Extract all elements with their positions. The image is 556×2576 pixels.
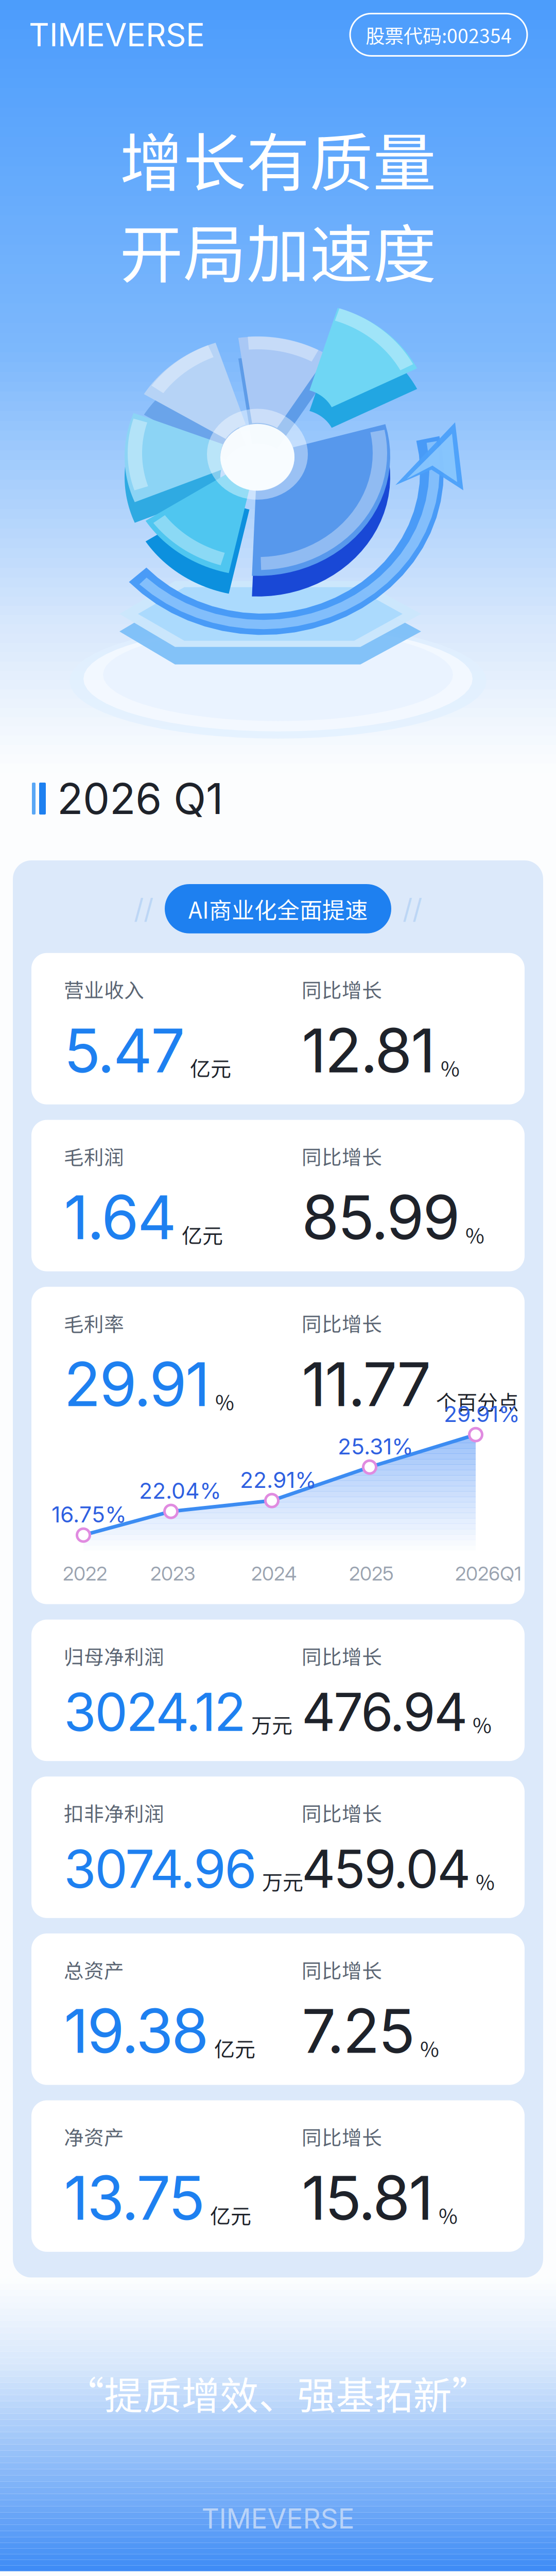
staticText: // (134, 892, 153, 925)
staticText: 13.75 (64, 2161, 205, 2234)
staticText: 12.81 (302, 1014, 436, 1087)
staticText: 同比增长 (302, 1641, 382, 1670)
staticText: % (465, 1219, 484, 1249)
staticText: 22.91% (240, 1467, 317, 1493)
staticText: 476.94 (302, 1680, 467, 1744)
staticText: 开局加速度 (120, 204, 436, 296)
staticText: 2022 (63, 1562, 107, 1585)
staticText: 2026 Q1 (57, 773, 223, 824)
staticText: 5.47 (64, 1014, 185, 1087)
staticText: 营业收入 (64, 975, 144, 1003)
staticText: % (215, 1386, 234, 1416)
staticText: 7.25 (302, 1994, 415, 2067)
staticText: 2025 (349, 1562, 394, 1585)
staticText: 29.91% (444, 1401, 520, 1427)
staticText: 11.77 (302, 1348, 431, 1421)
staticText: 同比增长 (302, 2122, 382, 2151)
staticText: 85.99 (302, 1181, 460, 1254)
staticText: 万元 (262, 1866, 303, 1896)
staticText: % (441, 1052, 460, 1082)
staticText: 1.64 (64, 1181, 177, 1254)
staticText: 同比增长 (302, 1798, 382, 1827)
staticText: 扣非净利润 (64, 1798, 164, 1827)
staticText: 同比增长 (302, 1955, 382, 1984)
staticText: 个百分点 (436, 1386, 518, 1416)
staticText: 毛利润 (64, 1142, 124, 1170)
staticText: 同比增长 (302, 975, 382, 1003)
staticText: 亿元 (182, 1219, 223, 1249)
staticText: 增长有质量 (120, 113, 436, 204)
staticText: 亿元 (214, 2033, 255, 2063)
staticText: TIMEVERSE (29, 16, 205, 54)
staticText: % (420, 2033, 439, 2063)
staticText: TIMEVERSE (202, 2502, 354, 2535)
staticText: 同比增长 (302, 1308, 382, 1337)
staticText: 25.31% (338, 1433, 413, 1460)
staticText: “提质增效、强基拓新” (66, 2365, 490, 2421)
staticText: 万元 (251, 1709, 292, 1739)
staticText: 总资产 (64, 1955, 124, 1984)
staticText: % (476, 1866, 495, 1896)
staticText: % (473, 1709, 492, 1739)
staticText: 3074.96 (64, 1837, 257, 1900)
staticText: 22.04% (139, 1477, 221, 1504)
staticText: 19.38 (64, 1994, 209, 2067)
staticText: // (403, 892, 422, 925)
staticText: 29.91 (64, 1348, 210, 1421)
staticText: 2026Q1 (455, 1562, 522, 1585)
staticText: 毛利率 (64, 1308, 124, 1337)
staticText: 同比增长 (302, 1142, 382, 1170)
staticText: 股票代码:002354 (366, 21, 512, 49)
staticText: 15.81 (302, 2161, 433, 2234)
staticText: 2023 (150, 1562, 196, 1585)
staticText: 3024.12 (64, 1680, 246, 1744)
staticText: 亿元 (210, 2200, 251, 2230)
staticText: 2024 (251, 1562, 297, 1585)
staticText: 16.75% (51, 1501, 127, 1528)
staticText: 亿元 (190, 1052, 231, 1082)
staticText: 净资产 (64, 2122, 124, 2151)
staticText: % (439, 2200, 458, 2230)
staticText: 459.04 (302, 1837, 471, 1900)
staticText: 归母净利润 (64, 1641, 164, 1670)
staticText: AI商业化全面提速 (188, 892, 368, 925)
